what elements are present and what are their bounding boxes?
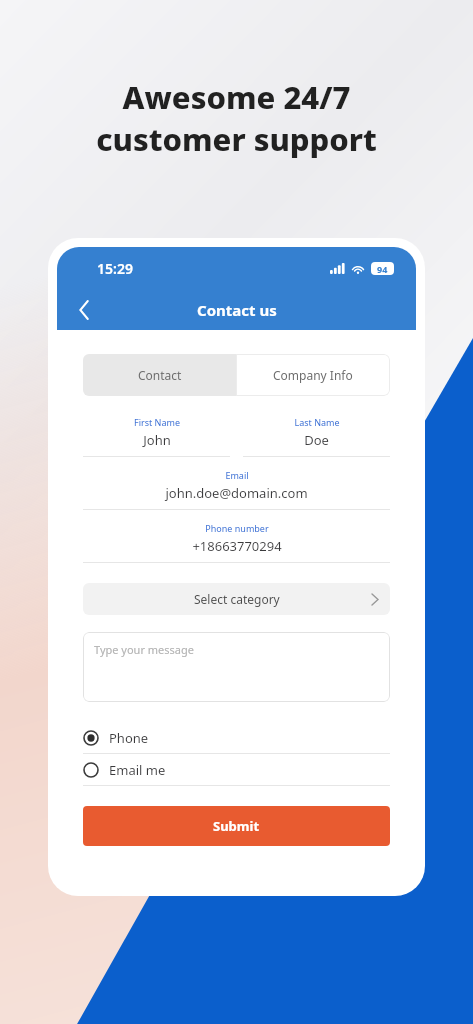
staticText: Email [225, 469, 249, 481]
button[interactable]: Submit [83, 806, 390, 846]
staticText: Doe [304, 431, 329, 449]
button[interactable]: Phone number [83, 522, 390, 563]
button[interactable]: First Name [83, 416, 230, 457]
button[interactable]: Type your message [83, 632, 390, 702]
button[interactable]: Company Info [236, 354, 390, 396]
staticText: Phone number [205, 522, 269, 534]
staticText: Select category [194, 591, 280, 607]
button[interactable]: Back [67, 293, 101, 327]
staticText: john.doe@domain.com [165, 484, 308, 502]
staticText: First Name [134, 416, 180, 428]
staticText: Last Name [294, 416, 340, 428]
button[interactable]: Phone [83, 722, 390, 754]
staticText: Company Info [273, 367, 353, 383]
staticText: Submit [213, 817, 260, 835]
button[interactable]: Last Name [243, 416, 390, 457]
button[interactable]: Contact [83, 354, 236, 396]
button[interactable]: Email [83, 469, 390, 510]
staticText: Awesome 24/7 customer support [96, 76, 377, 160]
staticText: +18663770294 [192, 537, 282, 555]
button[interactable]: Email me [83, 754, 390, 786]
staticText: Email me [109, 761, 166, 779]
staticText: 15:29 [97, 259, 133, 278]
staticText: Contact us [197, 300, 277, 320]
staticText: Phone [109, 729, 149, 747]
staticText: John [143, 431, 171, 449]
staticText: Contact [138, 367, 182, 383]
staticText: 94 [377, 263, 388, 275]
staticText: Type your message [94, 642, 194, 657]
button[interactable]: Select category [83, 583, 390, 615]
